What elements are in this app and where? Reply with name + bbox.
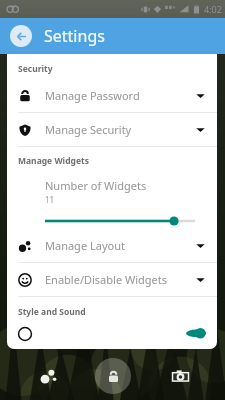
button[interactable]: Camera xyxy=(167,363,193,389)
button[interactable] xyxy=(7,318,217,338)
staticText: 11 xyxy=(45,194,55,205)
staticText: Manage Security xyxy=(45,122,132,137)
button[interactable]: Manage Layout xyxy=(7,229,217,262)
staticText: 4:02 xyxy=(204,3,222,15)
staticText: Manage Widgets xyxy=(18,155,89,167)
button[interactable]: Manage Security xyxy=(7,113,217,146)
staticText: Number of Widgets xyxy=(45,178,147,193)
staticText: Manage Layout xyxy=(45,238,125,253)
staticText: Settings xyxy=(44,25,105,47)
staticText: Style and Sound xyxy=(18,306,86,318)
staticText: Security xyxy=(18,63,53,75)
button[interactable]: Manage Password xyxy=(7,79,217,112)
button[interactable]: Enable/Disable Widgets xyxy=(7,263,217,296)
button[interactable]: Back xyxy=(10,25,32,47)
button[interactable]: Widgets xyxy=(36,363,62,389)
button[interactable] xyxy=(45,213,195,229)
button[interactable]: Unlock xyxy=(95,358,131,394)
staticText: Manage Password xyxy=(45,88,140,103)
staticText: Enable/Disable Widgets xyxy=(45,272,168,287)
